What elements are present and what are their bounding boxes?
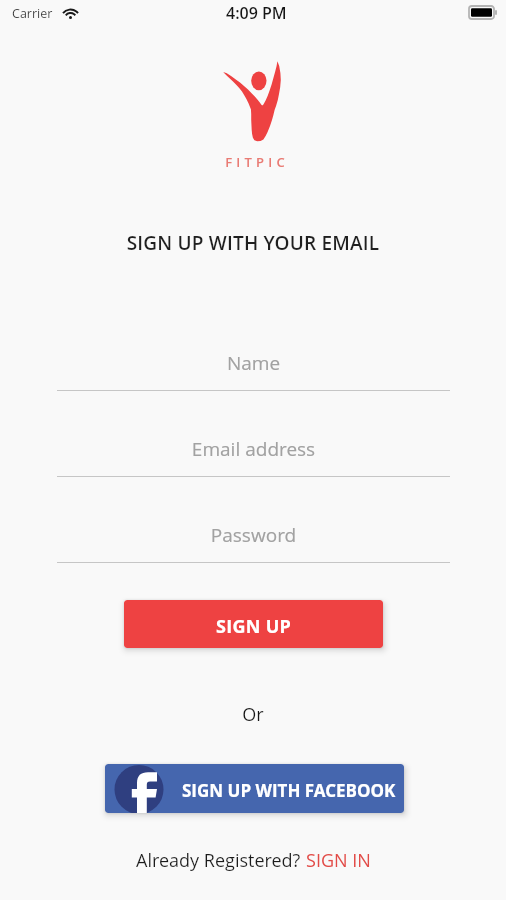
button[interactable]: SIGN UP WITH FACEBOOK <box>105 764 404 813</box>
staticText: FITPIC <box>4 153 506 171</box>
staticText: SIGN UP <box>216 614 292 639</box>
staticText: SIGN UP WITH YOUR EMAIL <box>0 230 506 256</box>
button[interactable]: Password <box>57 518 450 563</box>
staticText: Carrier <box>12 5 53 22</box>
staticText: Name <box>57 350 450 376</box>
other: Battery full <box>468 5 498 20</box>
staticText: SIGN UP WITH FACEBOOK <box>182 779 396 802</box>
staticText: Email address <box>57 436 450 462</box>
staticText: Or <box>0 702 506 727</box>
staticText: Already Registered? <box>136 848 306 873</box>
staticText: 4:09 PM <box>226 2 287 24</box>
button[interactable]: Name <box>57 346 450 391</box>
other: Wi-Fi signal <box>61 7 80 19</box>
staticText: Password <box>57 522 450 548</box>
button[interactable]: Email address <box>57 432 450 477</box>
other: FitPic logo <box>221 58 285 140</box>
button[interactable]: SIGN UP <box>124 600 383 648</box>
button[interactable]: SIGN IN <box>306 848 371 873</box>
